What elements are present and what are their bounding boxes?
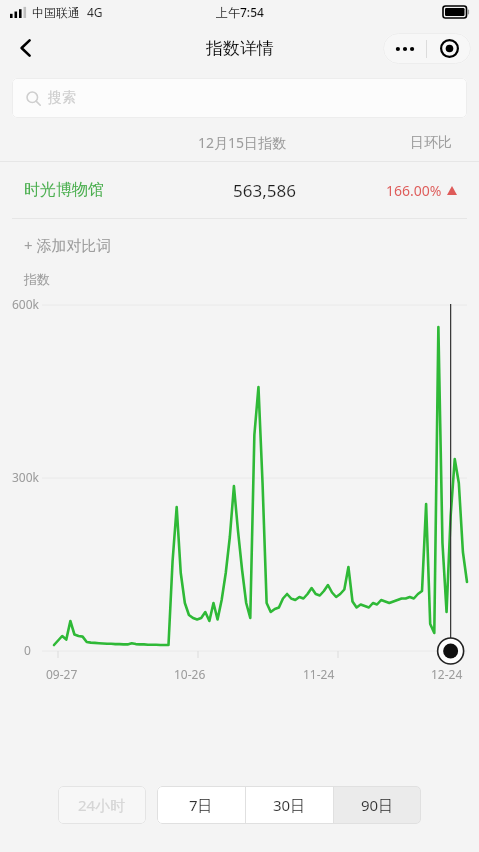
staticText: + 添加对比词: [24, 235, 112, 255]
staticText: 90日: [361, 795, 394, 815]
button[interactable]: 搜索: [12, 78, 467, 118]
staticText: 搜索: [48, 89, 76, 107]
staticText: 4G: [87, 4, 103, 20]
staticText: 10-26: [174, 666, 206, 682]
staticText: 时光博物馆: [24, 180, 104, 200]
staticText: 30日: [273, 795, 306, 815]
staticText: 12月15日指数: [198, 133, 287, 152]
staticText: 11-24: [303, 666, 335, 682]
button[interactable]: + 添加对比词: [0, 219, 479, 271]
button[interactable]: Back: [6, 28, 46, 68]
staticText: 上午7:54: [216, 4, 264, 20]
button[interactable]: More options: [383, 33, 426, 64]
staticText: 300k: [12, 469, 40, 485]
button[interactable]: 7日: [157, 786, 245, 824]
staticText: 09-27: [46, 666, 78, 682]
staticText: 中国联通: [32, 5, 80, 20]
button[interactable]: 时光博物馆: [0, 162, 479, 218]
staticText: 166.00%: [386, 181, 442, 200]
button[interactable]: 30日: [246, 786, 333, 824]
staticText: 日环比: [410, 134, 452, 152]
staticText: 指数详情: [206, 38, 274, 59]
staticText: 600k: [12, 296, 40, 312]
staticText: 12-24: [431, 666, 463, 682]
staticText: 563,586: [233, 179, 296, 202]
staticText: 0: [24, 642, 31, 658]
staticText: 指数: [24, 271, 50, 287]
staticText: 7日: [189, 795, 213, 815]
button[interactable]: 24小时: [58, 786, 146, 824]
button[interactable]: 90日: [334, 786, 421, 824]
button[interactable]: Close mini program: [427, 33, 471, 64]
staticText: 24小时: [78, 795, 126, 815]
